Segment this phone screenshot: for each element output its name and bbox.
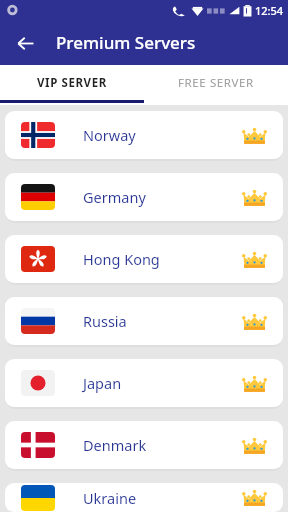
staticText: Premium Servers bbox=[56, 31, 196, 54]
button[interactable]: Ukraine bbox=[5, 483, 283, 512]
staticText: VIP SERVER bbox=[37, 75, 107, 91]
button[interactable]: Denmark bbox=[5, 421, 283, 469]
staticText: Hong Kong bbox=[83, 249, 160, 269]
button[interactable]: FREE SERVER bbox=[144, 65, 288, 100]
button[interactable]: Norway bbox=[5, 111, 283, 159]
button[interactable]: Back bbox=[11, 29, 39, 57]
button[interactable]: Germany bbox=[5, 173, 283, 221]
staticText: Denmark bbox=[83, 435, 147, 455]
staticText: 12:54 bbox=[255, 3, 284, 18]
button[interactable]: VIP SERVER bbox=[0, 65, 144, 100]
button[interactable]: Japan bbox=[5, 359, 283, 407]
staticText: Germany bbox=[83, 187, 146, 207]
staticText: Ukraine bbox=[83, 488, 137, 508]
staticText: Russia bbox=[83, 311, 127, 331]
button[interactable]: Hong Kong bbox=[5, 235, 283, 283]
staticText: Norway bbox=[83, 125, 136, 145]
staticText: Japan bbox=[83, 373, 122, 393]
button[interactable]: Russia bbox=[5, 297, 283, 345]
staticText: FREE SERVER bbox=[178, 75, 254, 91]
